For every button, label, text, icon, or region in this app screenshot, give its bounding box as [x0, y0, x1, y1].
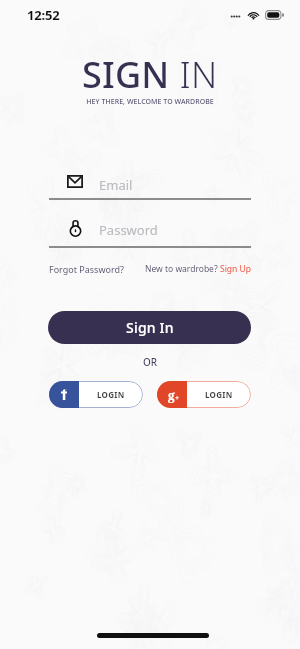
staticText: Sign In — [126, 318, 174, 337]
button[interactable]: Sign In — [48, 311, 251, 344]
staticText: OR — [0, 355, 300, 369]
button[interactable]: LOGIN — [49, 381, 143, 408]
staticText: HEY THERE, WELCOME TO WARDROBE — [0, 97, 300, 107]
staticText: Password — [99, 221, 158, 239]
button[interactable]: New to wardrobe? — [145, 263, 251, 275]
staticText: Sign Up — [220, 263, 251, 275]
staticText: New to wardrobe? — [145, 263, 220, 275]
staticText: 12:52 — [27, 6, 60, 24]
staticText: Email — [99, 176, 133, 194]
staticText: g — [168, 387, 175, 403]
staticText: LOGIN — [205, 389, 233, 400]
staticText: LOGIN — [97, 389, 125, 400]
staticText: IN — [170, 50, 218, 99]
button[interactable]: Forgot Password? — [49, 263, 124, 275]
button[interactable]: g — [157, 381, 251, 408]
staticText: SIGN — [82, 50, 170, 99]
